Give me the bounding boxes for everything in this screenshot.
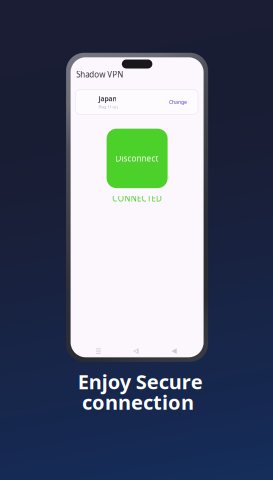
staticText: Enjoy Secure	[78, 368, 203, 395]
staticText: Japan	[98, 94, 116, 103]
staticText: Disconnect	[116, 153, 159, 164]
staticText: Shadow VPN	[76, 69, 123, 80]
button[interactable]: Disconnect	[107, 129, 168, 188]
staticText: CONNECTED	[112, 193, 162, 204]
staticText: connection	[82, 389, 194, 415]
staticText: Ping: 11 ms	[98, 104, 118, 109]
staticText: Change	[169, 98, 187, 105]
